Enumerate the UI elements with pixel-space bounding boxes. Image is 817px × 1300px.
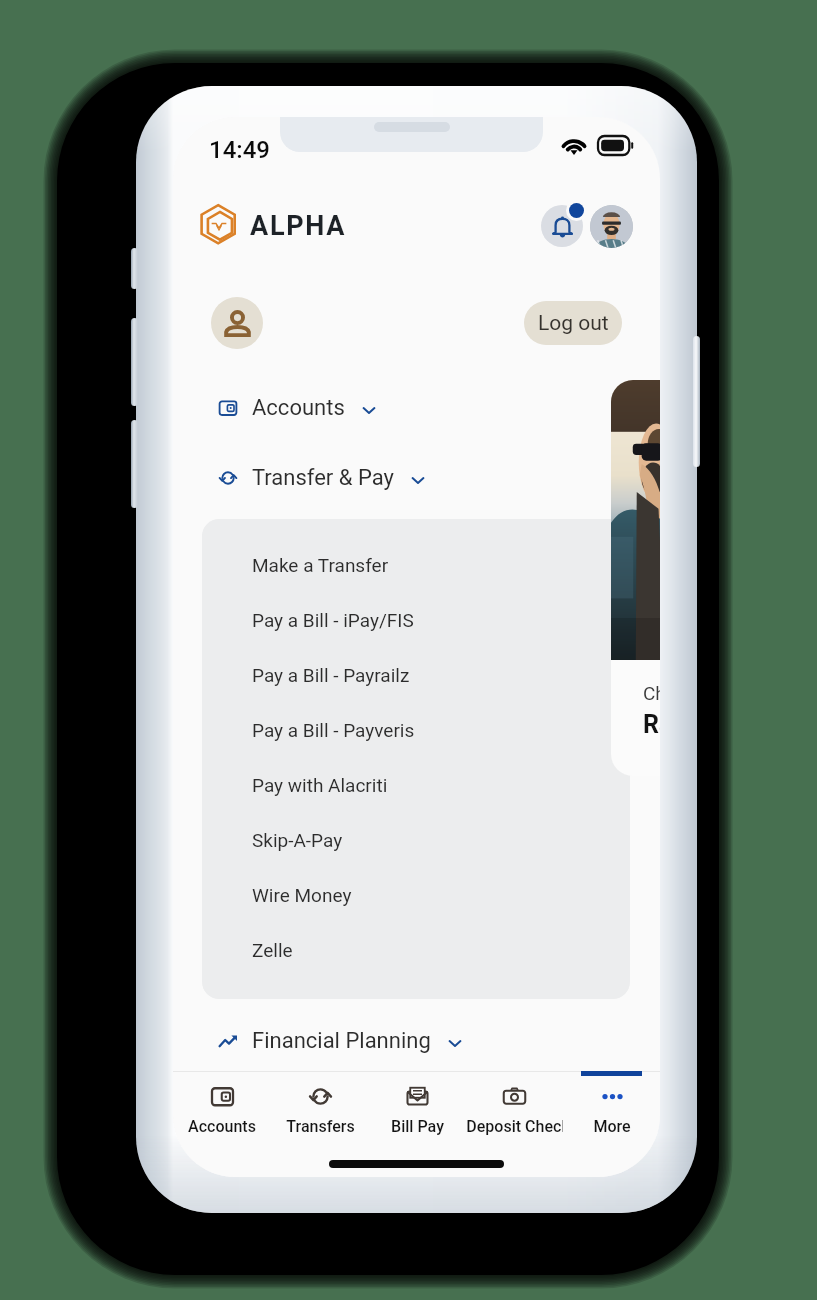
button[interactable]: More [563, 1071, 660, 1147]
button[interactable]: Bill Pay [369, 1071, 466, 1147]
staticText: Rate [643, 710, 660, 739]
staticText: Pay with Alacriti [252, 774, 388, 796]
staticText: Accounts [188, 1117, 256, 1136]
staticText: Zelle [252, 939, 293, 961]
staticText: Pay a Bill - iPay/FIS [252, 609, 414, 631]
button[interactable]: Accounts [173, 379, 660, 437]
staticText: Pay a Bill - Payrailz [252, 664, 410, 686]
button[interactable]: Pay a Bill - iPay/FIS [202, 592, 630, 647]
button[interactable]: Financial Planning [173, 1012, 660, 1070]
staticText: ALPHA [250, 210, 347, 242]
button[interactable]: Account [211, 297, 263, 349]
button[interactable]: Deposit Check [466, 1071, 563, 1147]
button[interactable]: ALPHA [198, 204, 347, 246]
staticText: 14:49 [209, 136, 270, 164]
button[interactable]: Make a Transfer [202, 537, 630, 592]
staticText: Checking [643, 682, 660, 704]
staticText: More [593, 1117, 631, 1136]
staticText: Make a Transfer [252, 554, 389, 576]
staticText: Pay a Bill - Payveris [252, 719, 415, 741]
staticText: Deposit Check [466, 1117, 563, 1136]
button[interactable]: Accounts [173, 1071, 271, 1147]
button[interactable]: Log out [524, 301, 622, 345]
staticText: Skip-A-Pay [252, 829, 343, 851]
staticText: Log out [538, 311, 609, 336]
button[interactable]: Pay with Alacriti [202, 757, 630, 812]
button[interactable]: Notifications [541, 205, 583, 247]
staticText: Transfers [286, 1117, 355, 1136]
button[interactable]: Pay a Bill - Payrailz [202, 647, 630, 702]
button[interactable]: Zelle [202, 922, 630, 977]
staticText: Financial Planning [252, 1028, 431, 1054]
button[interactable]: Checking [611, 380, 660, 776]
button[interactable]: Wire Money [202, 867, 630, 922]
staticText: Accounts [252, 395, 345, 421]
staticText: Bill Pay [391, 1117, 444, 1136]
staticText: Wire Money [252, 884, 352, 906]
staticText: Transfer & Pay [252, 465, 394, 491]
button[interactable]: Skip-A-Pay [202, 812, 630, 867]
button[interactable]: Profile [590, 205, 633, 248]
button[interactable]: Pay a Bill - Payveris [202, 702, 630, 757]
button[interactable]: Transfer & Pay [173, 449, 660, 507]
button[interactable]: Transfers [271, 1071, 369, 1147]
